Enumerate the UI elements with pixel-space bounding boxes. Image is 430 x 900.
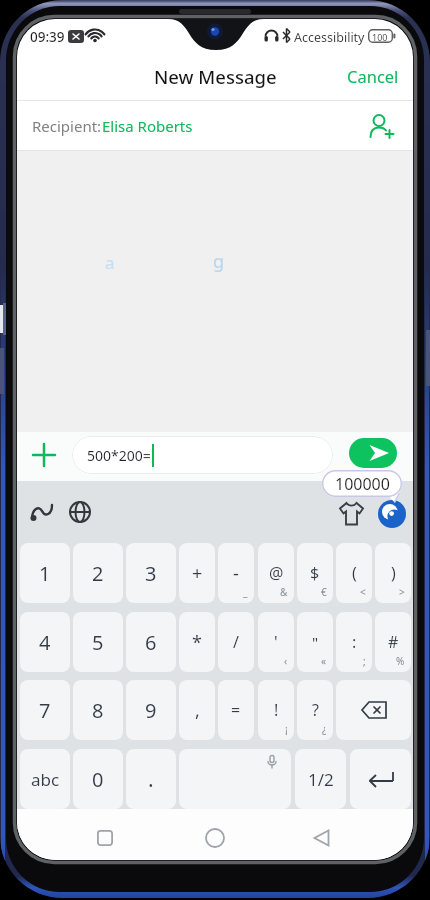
staticText: 8 [92, 697, 104, 724]
button[interactable]: ( [336, 543, 372, 603]
button[interactable]: - [218, 543, 254, 603]
button[interactable]: @ [258, 543, 294, 603]
staticText: 7 [39, 697, 51, 724]
button[interactable] [339, 502, 364, 526]
staticText: 100 [372, 31, 388, 43]
button[interactable]: 3 [126, 543, 176, 603]
button[interactable] [313, 829, 330, 847]
staticText: # [388, 631, 399, 653]
button[interactable] [30, 501, 54, 523]
staticText: ¡ [285, 722, 288, 736]
staticText: @ [269, 562, 284, 584]
button[interactable]: + [179, 543, 215, 603]
staticText: New Message [154, 64, 277, 89]
staticText: ) [391, 562, 396, 584]
staticText: ¿ [322, 722, 327, 736]
button[interactable]: 5 [73, 612, 123, 672]
staticText: 09:39 [30, 28, 65, 46]
staticText: . [148, 765, 154, 794]
staticText: 1 [39, 560, 51, 587]
button[interactable] [336, 680, 411, 740]
button[interactable]: ' [258, 612, 294, 672]
button[interactable]: 100000 [322, 470, 402, 497]
button[interactable]: 1/2 [295, 749, 346, 809]
staticText: ; [363, 654, 366, 668]
button[interactable]: 1 [20, 543, 70, 603]
staticText: / [233, 631, 239, 653]
staticText: $ [310, 562, 320, 584]
staticText: > [399, 585, 405, 599]
staticText: " [312, 632, 319, 652]
staticText: * [192, 630, 202, 655]
staticText: 100000 [335, 473, 390, 495]
button[interactable]: Recipient: [17, 101, 413, 151]
button[interactable]: 2 [73, 543, 123, 603]
button[interactable]: $ [297, 543, 333, 603]
button[interactable] [205, 828, 225, 848]
staticText: € [321, 585, 327, 599]
staticText: ! [274, 699, 279, 721]
button[interactable] [368, 113, 394, 139]
staticText: Elisa Roberts [102, 116, 193, 136]
button[interactable]: ) [375, 543, 411, 603]
button[interactable]: ? [297, 680, 333, 740]
staticText: 5 [92, 629, 104, 656]
staticText: 1/2 [308, 768, 334, 791]
staticText: - [233, 561, 239, 586]
staticText: a [105, 251, 115, 274]
staticText: = [231, 699, 241, 721]
button[interactable]: ! [258, 680, 294, 740]
staticText: Cancel [347, 65, 399, 87]
button[interactable]: Cancel [347, 63, 399, 89]
button[interactable]: 9 [126, 680, 176, 740]
button[interactable] [350, 749, 411, 809]
button[interactable]: 500*200= [72, 436, 333, 474]
button[interactable]: # [375, 612, 411, 672]
staticText: 9 [145, 697, 157, 724]
staticText: 2 [92, 560, 104, 587]
button[interactable] [378, 500, 406, 528]
button[interactable]: , [179, 680, 215, 740]
staticText: 3 [145, 560, 157, 587]
staticText: + [192, 561, 203, 586]
staticText: 0 [92, 766, 104, 793]
staticText: ( [352, 562, 357, 584]
button[interactable]: abc [20, 749, 70, 809]
button[interactable]: . [126, 749, 176, 809]
staticText: , [195, 698, 200, 723]
button[interactable] [349, 438, 397, 468]
staticText: ‹ [284, 654, 288, 668]
button[interactable] [33, 444, 55, 466]
staticText: 4 [39, 629, 51, 656]
button[interactable]: * [179, 612, 215, 672]
button[interactable] [179, 749, 291, 809]
staticText: « [321, 654, 327, 668]
button[interactable]: : [336, 612, 372, 672]
button[interactable]: 6 [126, 612, 176, 672]
staticText: Recipient: [32, 116, 102, 136]
staticText: & [280, 585, 288, 599]
staticText: % [396, 654, 405, 668]
staticText: ? [312, 699, 319, 721]
button[interactable]: 0 [73, 749, 123, 809]
button[interactable] [97, 830, 113, 846]
button[interactable]: " [297, 612, 333, 672]
button[interactable]: = [218, 680, 254, 740]
button[interactable] [69, 501, 91, 523]
staticText: abc [31, 768, 60, 791]
staticText: 6 [145, 629, 157, 656]
staticText: < [360, 585, 366, 599]
button[interactable]: / [218, 612, 254, 672]
staticText: Accessibility [294, 29, 365, 46]
staticText: ' [274, 631, 278, 653]
staticText: 500*200= [87, 446, 151, 465]
button[interactable]: 8 [73, 680, 123, 740]
button[interactable]: 7 [20, 680, 70, 740]
staticText: g [213, 249, 225, 274]
button[interactable]: 4 [20, 612, 70, 672]
staticText: : [352, 631, 357, 653]
staticText: _ [243, 585, 248, 599]
